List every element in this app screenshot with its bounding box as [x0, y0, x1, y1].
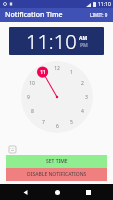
staticText: Notification Time: [5, 10, 63, 20]
button[interactable]: 11:10: [9, 27, 104, 55]
button[interactable]: DISABLE NOTIFICATIONS: [6, 168, 107, 181]
button[interactable]: Keyboard input: [9, 146, 16, 153]
staticText: DISABLE NOTIFICATIONS: [27, 171, 87, 178]
button[interactable]: AM: [79, 35, 88, 49]
staticText: AM: [79, 35, 88, 42]
staticText: 5: [70, 119, 73, 126]
button[interactable]: Back: [18, 185, 32, 199]
staticText: 11:10: [26, 28, 77, 55]
staticText: 6: [56, 123, 59, 130]
staticText: 10: [29, 80, 35, 87]
staticText: 2: [81, 80, 84, 87]
button[interactable]: LIMIT: 9: [85, 9, 113, 21]
staticText: 11: [40, 69, 46, 76]
staticText: PM: [80, 42, 88, 49]
staticText: 3: [85, 94, 88, 101]
staticText: 11:10: [98, 1, 111, 8]
staticText: 7: [42, 119, 45, 126]
staticText: 12: [54, 65, 60, 72]
button[interactable]: Recent apps: [81, 185, 95, 199]
button[interactable]: SET TIME: [6, 155, 107, 168]
button[interactable]: Home: [50, 185, 64, 199]
staticText: 9: [27, 94, 30, 101]
staticText: LIMIT: 9: [90, 12, 108, 18]
button[interactable]: Clock hour picker: [21, 61, 93, 133]
staticText: 4: [81, 108, 84, 115]
staticText: 1: [70, 69, 73, 76]
staticText: 8: [31, 108, 34, 115]
staticText: SET TIME: [46, 158, 68, 165]
